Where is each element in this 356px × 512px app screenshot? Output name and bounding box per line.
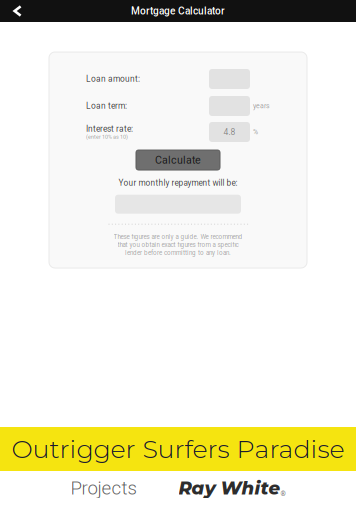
staticText: Interest rate: [86,124,133,134]
staticText: 4.8 [223,127,235,137]
staticText: Projects [70,477,136,499]
staticText: Your monthly repayment will be: [118,178,237,188]
staticText: Loan amount: [86,74,140,84]
staticText: % [253,128,258,136]
button[interactable]: Back [0,0,36,22]
staticText: that you obtain exact figures from a spe… [117,241,238,248]
staticText: Outrigger Surfers Paradise [11,434,344,464]
staticText: years [253,102,270,110]
staticText: Mortgage Calculator [131,5,225,17]
staticText: Ray White [178,477,280,499]
staticText: ® [280,490,285,498]
staticText: These figures are only a guide. We recom… [113,233,242,240]
button[interactable]: Calculate [136,150,220,170]
staticText: (enter 10% as 10) [86,134,128,140]
staticText: lender before committing to any loan. [125,249,231,256]
staticText: Calculate [155,154,201,166]
staticText: Loan term: [86,101,127,111]
